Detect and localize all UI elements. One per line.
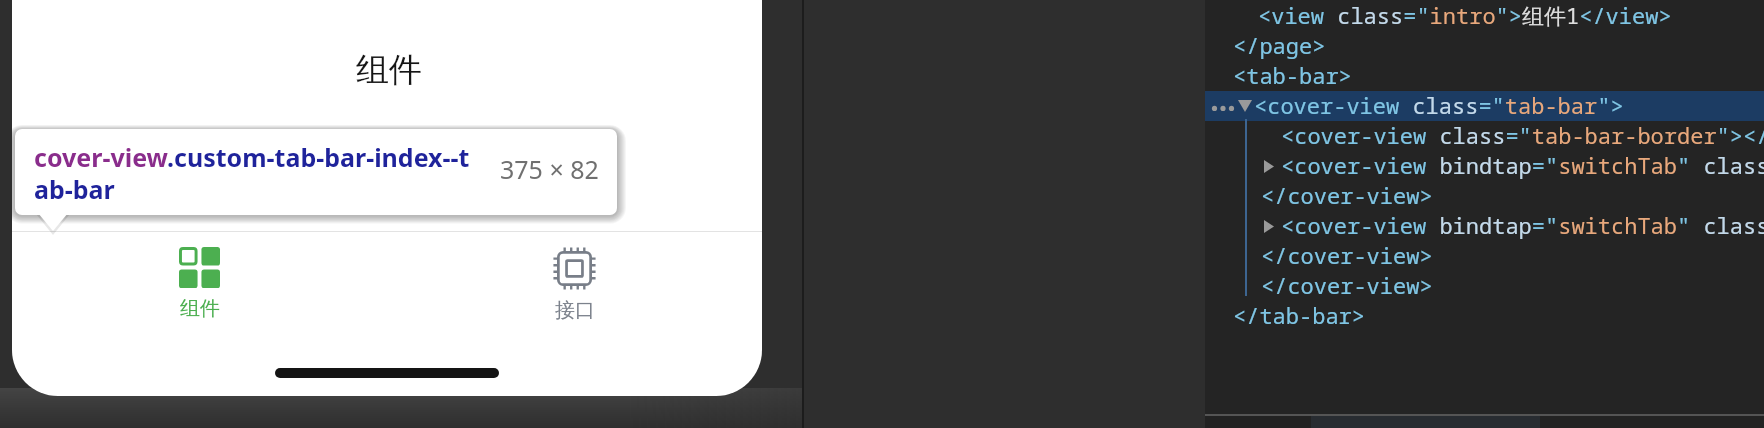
staticText: <cover-view bindtap="switchTab" class	[1281, 210, 1764, 240]
button[interactable]: Expand node	[1258, 154, 1280, 178]
staticText: <cover-view class="tab-bar-border"></	[1281, 120, 1764, 150]
button[interactable]: Components tab	[149, 247, 250, 321]
button[interactable]: <cover-view class="tab-bar">	[1205, 90, 1764, 120]
staticText: 组件	[356, 49, 422, 91]
staticText: cover-view.custom-tab-bar-index--t	[34, 140, 470, 174]
staticText: <tab-bar>	[1233, 60, 1352, 90]
staticText: <cover-view bindtap="switchTab" class	[1281, 150, 1764, 180]
button[interactable]: </cover-view>	[1205, 270, 1764, 300]
staticText: 组件	[180, 296, 220, 321]
button[interactable]: API tab	[524, 247, 625, 323]
button[interactable]: Show more nodes	[1209, 96, 1237, 116]
button[interactable]: Collapse node	[1234, 94, 1256, 118]
staticText: </cover-view>	[1261, 270, 1433, 300]
button[interactable]: </cover-view>	[1205, 240, 1764, 270]
button[interactable]: <cover-view bindtap="switchTab" class	[1205, 210, 1764, 240]
button[interactable]: Expand node	[1258, 214, 1280, 238]
staticText: ab-bar	[34, 172, 115, 206]
button[interactable]: </cover-view>	[1205, 180, 1764, 210]
staticText: 接口	[555, 298, 595, 323]
staticText: </cover-view>	[1261, 180, 1433, 210]
button[interactable]: <cover-view class="tab-bar-border"></	[1205, 120, 1764, 150]
button[interactable]: </tab-bar>	[1205, 300, 1764, 330]
other: API tab	[553, 247, 596, 290]
button[interactable]: <cover-view bindtap="switchTab" class	[1205, 150, 1764, 180]
other: Components tab	[179, 247, 220, 288]
staticText: 375 × 82	[500, 152, 599, 186]
staticText: </page>	[1233, 30, 1326, 60]
staticText: <cover-view class="tab-bar">	[1254, 90, 1624, 120]
staticText: <view class="intro">组件1</view>	[1258, 0, 1672, 30]
staticText: </cover-view>	[1261, 240, 1433, 270]
button[interactable]: <view class="intro">组件1</view>	[1205, 0, 1764, 30]
staticText: </tab-bar>	[1233, 300, 1366, 330]
button[interactable]: </page>	[1205, 30, 1764, 60]
button[interactable]: <tab-bar>	[1205, 60, 1764, 90]
button[interactable]: cover-view.custom-tab-bar-index--t	[15, 129, 617, 215]
